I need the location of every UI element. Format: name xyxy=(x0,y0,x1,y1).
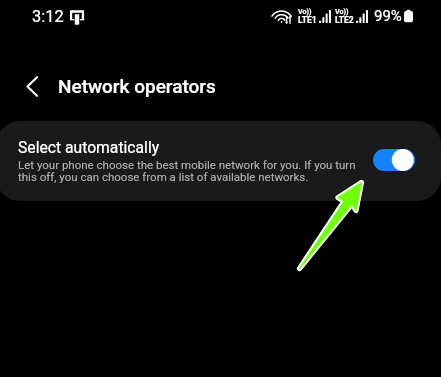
staticText: 99% xyxy=(374,7,402,25)
staticText: LTE1 xyxy=(298,15,317,25)
staticText: LTE2 xyxy=(335,15,354,25)
button[interactable]: Select automatically xyxy=(0,121,441,201)
staticText: Vo)) xyxy=(335,7,349,15)
staticText: Vo)) xyxy=(298,7,312,15)
staticText: 3:12 xyxy=(32,7,64,26)
staticText: Network operators xyxy=(58,75,216,97)
button[interactable]: Back xyxy=(14,68,50,104)
staticText: Let your phone choose the best mobile ne… xyxy=(18,158,360,184)
button[interactable]: Select automatically toggle xyxy=(373,149,415,171)
staticText: Select automatically xyxy=(18,138,160,156)
